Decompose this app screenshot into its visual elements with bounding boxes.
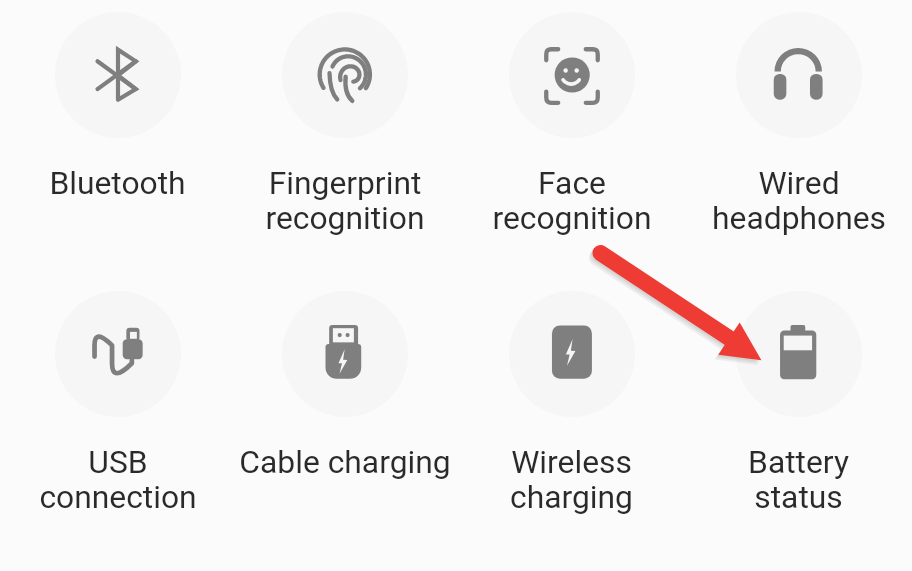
button[interactable]: Fingerprint recognition (231, 0, 458, 279)
staticText: Battery status (748, 443, 849, 516)
staticText: Face recognition (492, 164, 652, 237)
staticText: Fingerprint recognition (265, 164, 425, 237)
staticText: Bluetooth (49, 164, 186, 201)
button[interactable]: Wireless charging (458, 279, 685, 571)
button[interactable]: Wired headphones (685, 0, 912, 279)
staticText: Wireless charging (510, 443, 633, 516)
button[interactable]: Face recognition (458, 0, 685, 279)
button[interactable]: USB connection (4, 279, 231, 571)
staticText: Wired headphones (712, 164, 886, 237)
staticText: USB connection (39, 443, 197, 516)
button[interactable]: Battery status (685, 279, 912, 571)
button[interactable]: Bluetooth (4, 0, 231, 279)
staticText: Cable charging (239, 443, 451, 480)
button[interactable]: Cable charging (231, 279, 458, 571)
